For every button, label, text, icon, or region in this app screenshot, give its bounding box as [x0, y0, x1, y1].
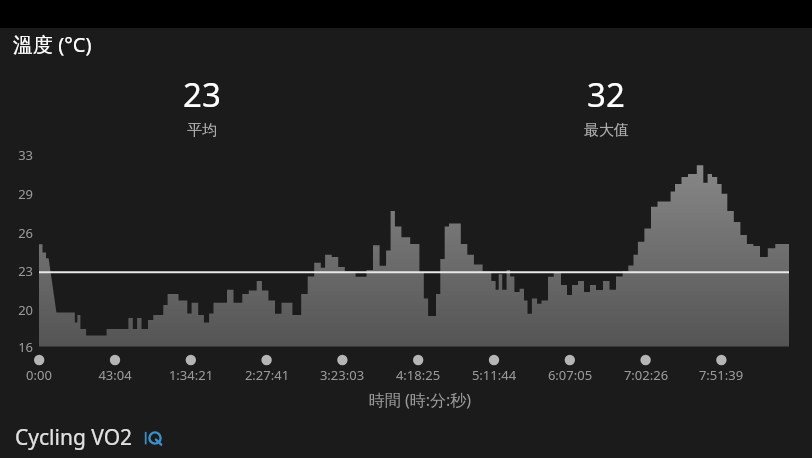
staticText: 6:07:05 — [525, 366, 615, 384]
staticText: 0:00 — [0, 366, 84, 384]
staticText: 3:23:03 — [297, 366, 387, 384]
staticText: 7:51:39 — [676, 366, 766, 384]
staticText: 43:04 — [70, 366, 160, 384]
staticText: 26 — [0, 224, 33, 242]
staticText: 2:27:41 — [222, 366, 312, 384]
staticText: 最大值 — [584, 121, 629, 140]
staticText: 5:11:44 — [449, 366, 539, 384]
staticText: 32 — [587, 72, 625, 117]
staticText: 4:18:25 — [373, 366, 463, 384]
staticText: 時間 (時:分:秒) — [320, 389, 520, 411]
staticText: Cycling VO2 — [15, 423, 133, 452]
staticText: 33 — [0, 146, 33, 164]
staticText: 23 — [183, 72, 221, 117]
staticText: 7:02:26 — [601, 366, 691, 384]
staticText: 溫度 (°C) — [13, 31, 92, 58]
staticText: 16 — [0, 338, 33, 356]
staticText: 平均 — [187, 121, 217, 140]
staticText: 23 — [0, 262, 33, 280]
staticText: 1:34:21 — [146, 366, 236, 384]
staticText: 29 — [0, 185, 33, 203]
staticText: 20 — [0, 301, 33, 319]
